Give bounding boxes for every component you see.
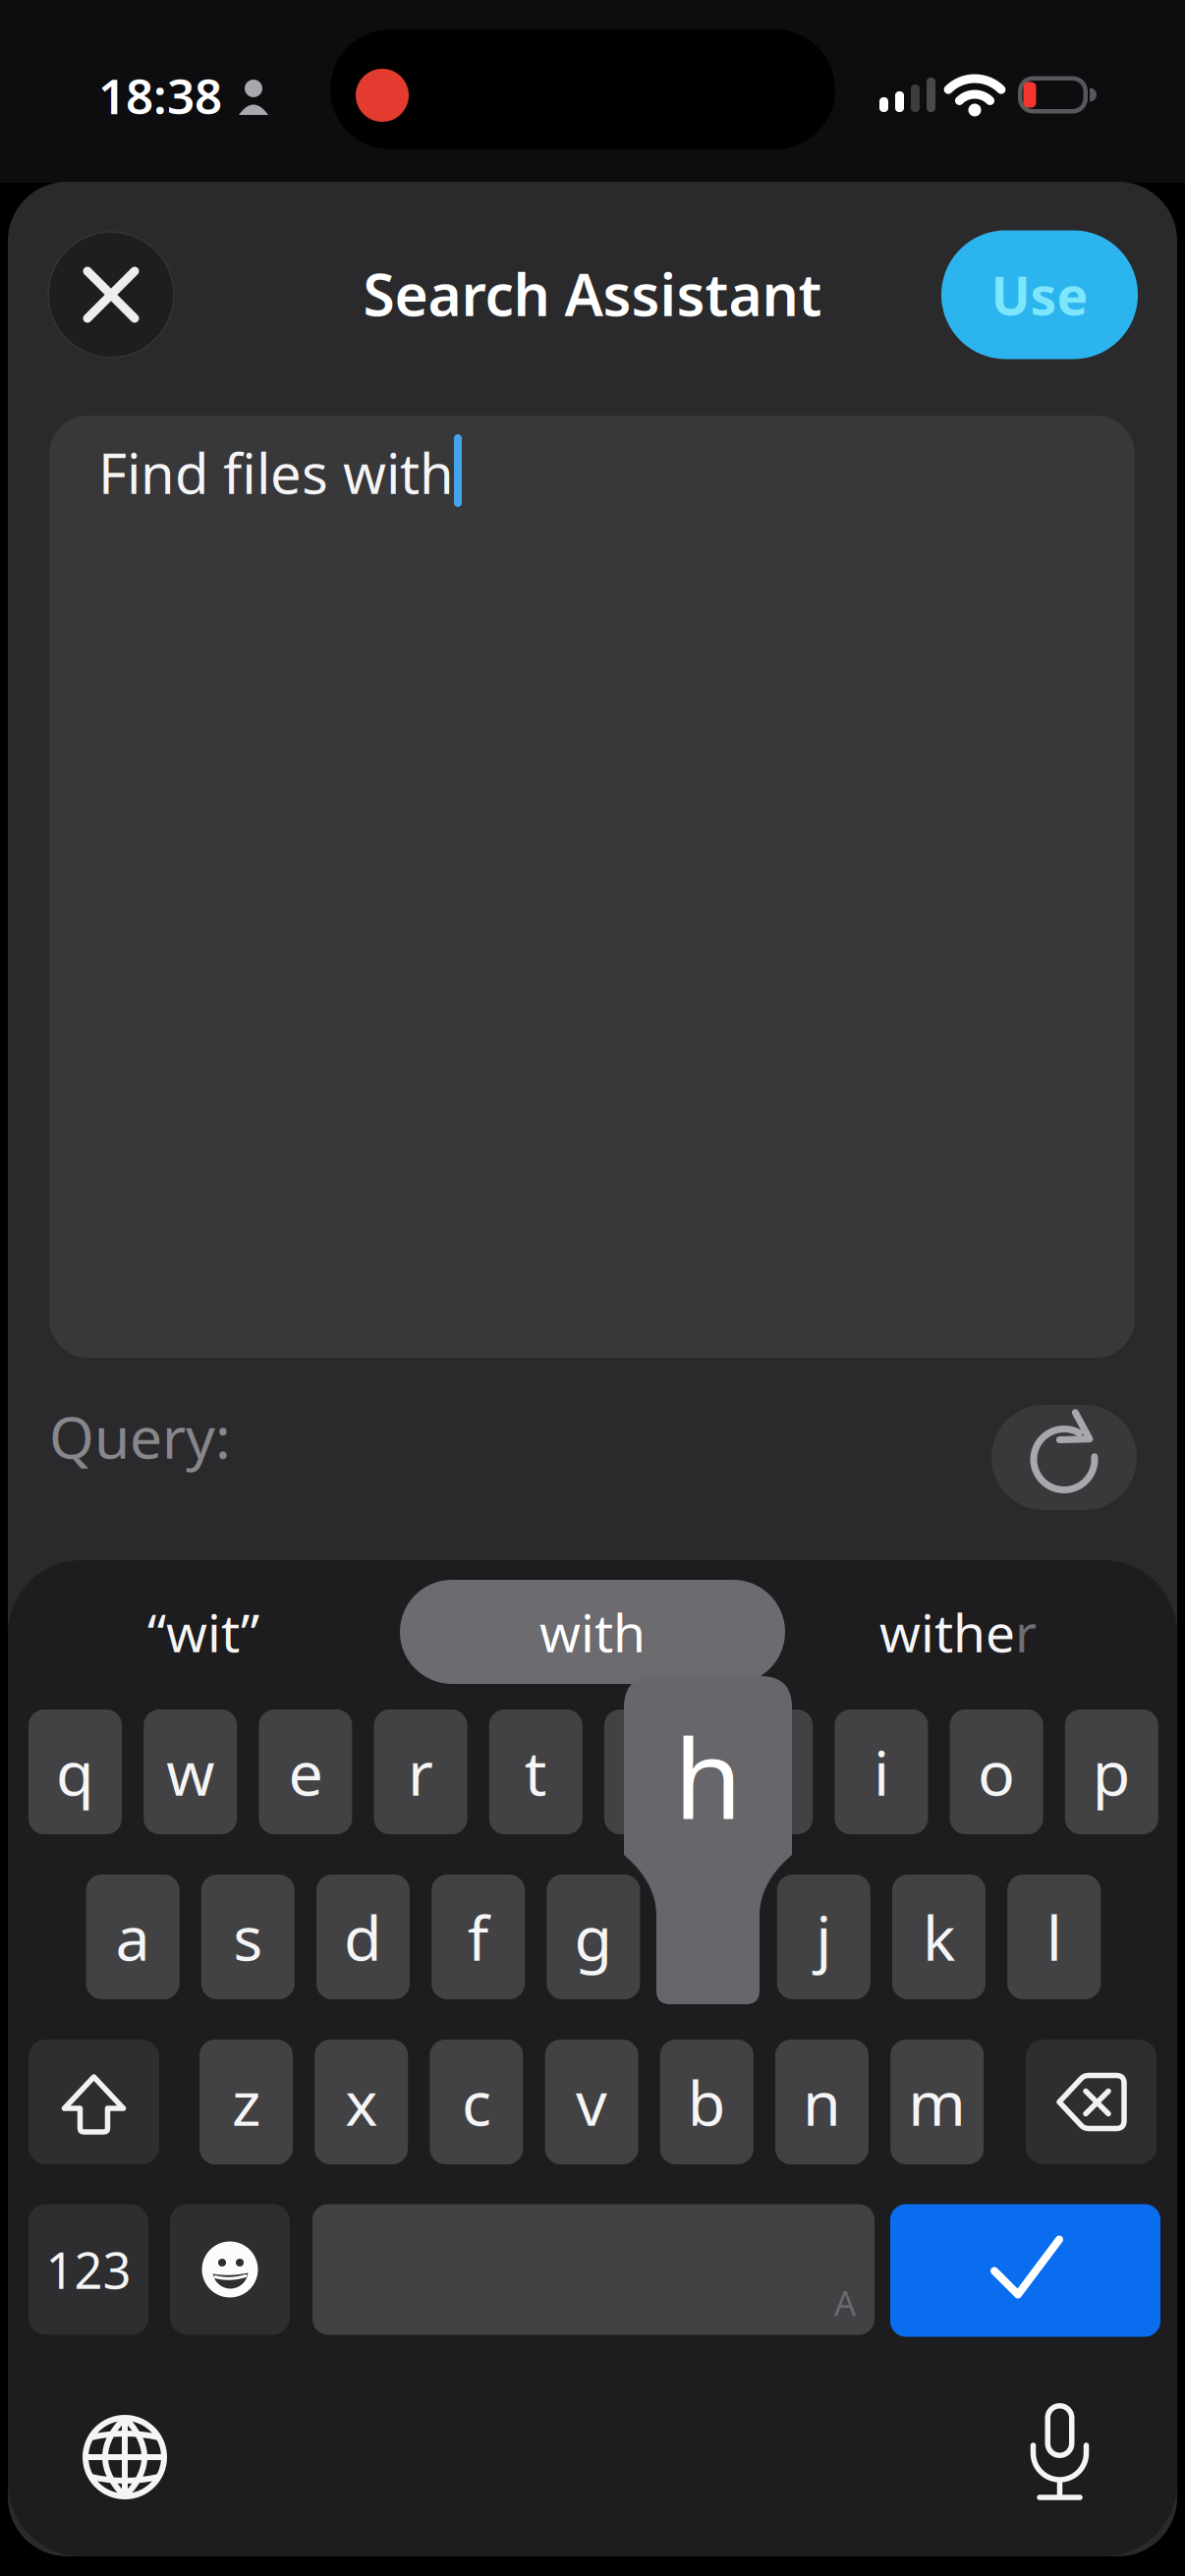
staticText: f [467, 1896, 489, 1978]
staticText: with [539, 1597, 646, 1667]
staticText: q [56, 1731, 94, 1813]
staticText: c [462, 2061, 491, 2143]
staticText: t [525, 1731, 547, 1813]
button[interactable]: o [950, 1709, 1043, 1834]
button[interactable]: m [890, 2040, 984, 2164]
staticText: Find files with [98, 436, 454, 509]
button[interactable]: a [86, 1875, 179, 1999]
staticText: p [1092, 1731, 1131, 1813]
button[interactable]: r [374, 1709, 467, 1834]
button[interactable]: Use [941, 230, 1138, 359]
staticText: v [576, 2061, 607, 2143]
button[interactable]: i [835, 1709, 928, 1834]
staticText: x [345, 2061, 378, 2143]
staticText: o [978, 1731, 1015, 1813]
button[interactable]: f [432, 1875, 525, 1999]
staticText: m [908, 2061, 966, 2143]
button[interactable]: e [259, 1709, 352, 1834]
button[interactable]: t [489, 1709, 582, 1834]
staticText: k [923, 1896, 955, 1978]
button[interactable]: 123 [28, 2204, 148, 2335]
staticText: h [674, 1703, 742, 1849]
staticText: d [344, 1896, 382, 1978]
staticText: 18:38 [98, 63, 222, 127]
button[interactable]: c [430, 2040, 523, 2164]
button[interactable]: Delete [1026, 2040, 1157, 2164]
button[interactable]: l [1007, 1875, 1101, 1999]
button[interactable]: u [719, 1709, 813, 1834]
button[interactable]: v [545, 2040, 638, 2164]
staticText: n [803, 2061, 841, 2143]
staticText: withe [879, 1597, 1015, 1667]
staticText: A [834, 2280, 856, 2325]
button[interactable]: Dictation [1005, 2400, 1113, 2508]
staticText: a [116, 1896, 150, 1978]
staticText: Query: [49, 1398, 231, 1475]
staticText: “wit” [147, 1597, 259, 1667]
staticText: Search Assistant [363, 255, 822, 332]
staticText: s [233, 1896, 263, 1978]
button[interactable]: x [315, 2040, 408, 2164]
button[interactable]: b [660, 2040, 753, 2164]
button[interactable]: Next keyboard [71, 2403, 179, 2511]
button[interactable]: p [1065, 1709, 1158, 1834]
button[interactable]: withe [791, 1580, 1125, 1684]
button[interactable]: n [775, 2040, 869, 2164]
staticText: i [873, 1731, 889, 1813]
button[interactable]: z [199, 2040, 293, 2164]
button[interactable]: Space [312, 2204, 875, 2335]
button[interactable]: Emoji [170, 2204, 290, 2335]
button[interactable]: q [28, 1709, 122, 1834]
staticText: Use [991, 260, 1088, 330]
staticText: 123 [46, 2236, 131, 2303]
button[interactable]: s [201, 1875, 295, 1999]
staticText: e [288, 1731, 323, 1813]
button[interactable]: Regenerate [991, 1405, 1137, 1510]
button[interactable]: g [547, 1875, 640, 1999]
button[interactable]: Shift [28, 2040, 159, 2164]
staticText: z [232, 2061, 260, 2143]
staticText: w [166, 1731, 214, 1813]
button[interactable]: “wit” [36, 1580, 370, 1684]
button[interactable]: Done [890, 2204, 1160, 2337]
staticText: j [816, 1896, 832, 1978]
staticText: g [574, 1896, 613, 1978]
button[interactable]: Close [47, 231, 175, 359]
staticText: l [1046, 1896, 1062, 1978]
button[interactable]: k [892, 1875, 986, 1999]
button[interactable]: with [400, 1580, 785, 1684]
staticText: b [688, 2061, 726, 2143]
button[interactable]: y [604, 1709, 698, 1834]
button[interactable]: j [777, 1875, 870, 1999]
staticText: r [1015, 1597, 1037, 1667]
staticText: r [408, 1731, 433, 1813]
button[interactable]: d [316, 1875, 410, 1999]
button[interactable]: w [144, 1709, 237, 1834]
